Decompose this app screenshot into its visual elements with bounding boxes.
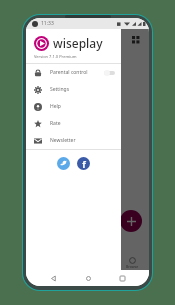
staticText: Browse bbox=[126, 264, 139, 269]
button[interactable]: Home bbox=[81, 271, 95, 285]
button[interactable]: Back bbox=[46, 271, 60, 285]
button[interactable]: Settings bbox=[26, 81, 121, 98]
button[interactable]: Rate bbox=[26, 115, 121, 132]
button[interactable]: Newsletter bbox=[26, 132, 121, 149]
staticText: Version 7.1.0 Premium bbox=[34, 54, 77, 59]
staticText: f bbox=[82, 158, 86, 170]
button[interactable]: Facebook bbox=[77, 157, 90, 170]
staticText: Newsletter bbox=[50, 137, 76, 144]
staticText: wiseplay bbox=[53, 35, 103, 51]
button[interactable]: Recents bbox=[115, 271, 129, 285]
staticText: Rate bbox=[50, 120, 61, 127]
button[interactable]: Add bbox=[120, 210, 142, 232]
button[interactable]: Parental control bbox=[26, 64, 121, 81]
button[interactable]: Grid view bbox=[128, 32, 144, 48]
button[interactable]: Twitter bbox=[57, 157, 70, 170]
staticText: 11:33 bbox=[41, 20, 54, 27]
button[interactable]: Help bbox=[26, 98, 121, 115]
staticText: Settings bbox=[50, 86, 70, 93]
button[interactable]: Search bbox=[109, 32, 125, 48]
button[interactable]: Browse bbox=[126, 257, 139, 269]
staticText: Parental control bbox=[50, 69, 88, 76]
staticText: Help bbox=[50, 103, 61, 110]
